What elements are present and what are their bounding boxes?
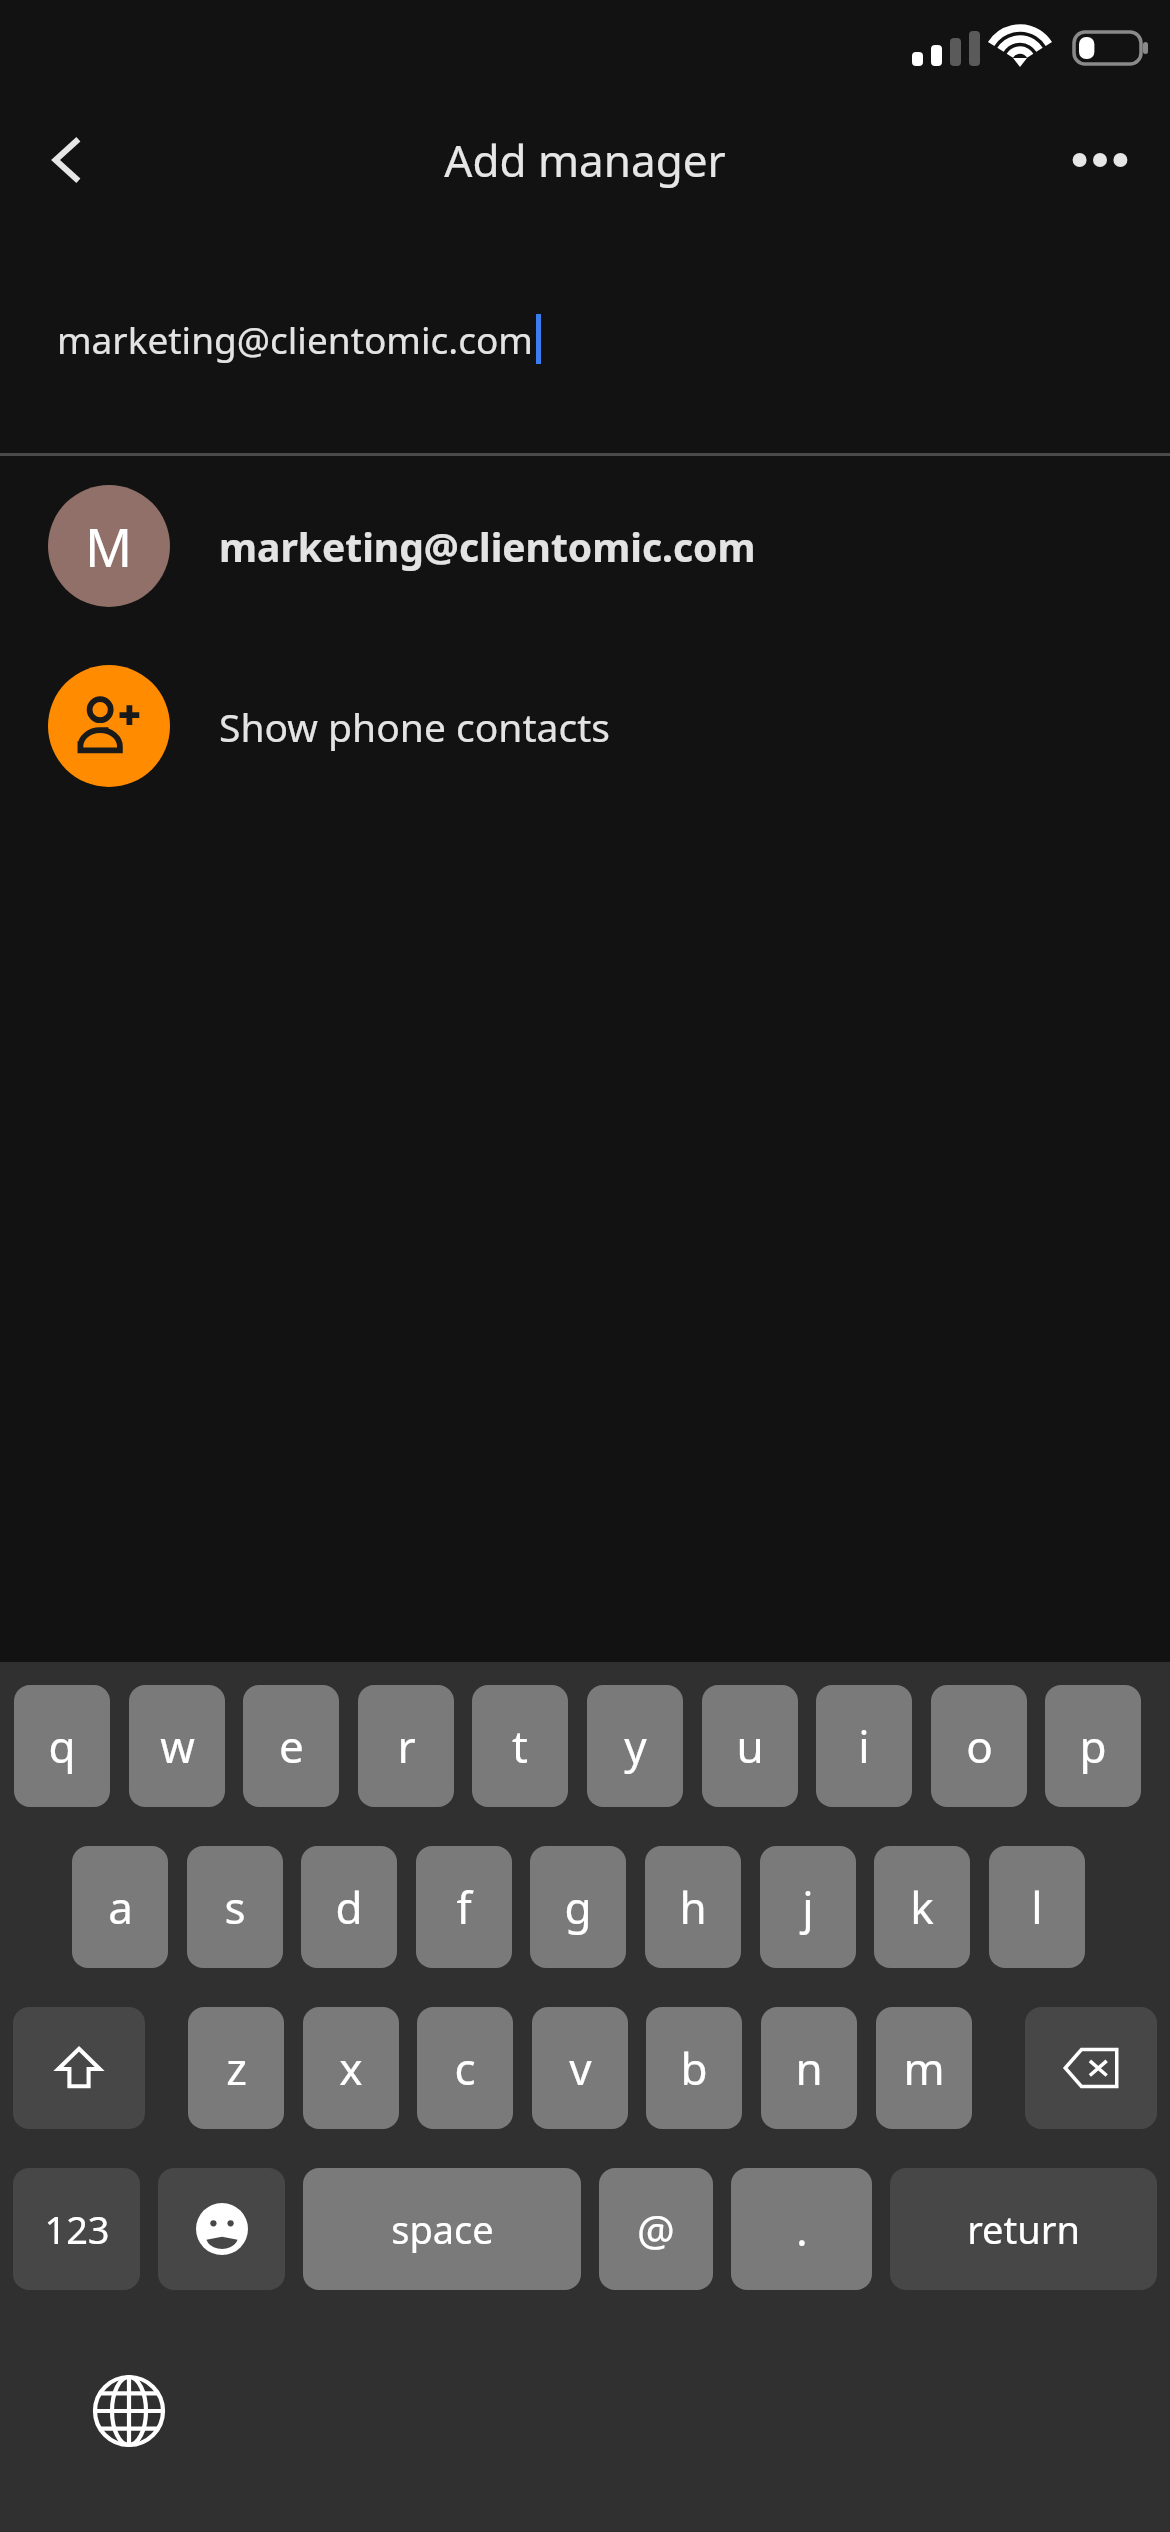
button[interactable]: e <box>243 1685 339 1807</box>
button[interactable]: i <box>816 1685 912 1807</box>
button[interactable]: y <box>587 1685 683 1807</box>
button[interactable]: r <box>358 1685 454 1807</box>
staticText: return <box>967 2203 1080 2255</box>
button[interactable]: @ <box>599 2168 713 2290</box>
staticText: r <box>397 1716 416 1776</box>
button[interactable]: j <box>760 1846 856 1968</box>
button[interactable]: Show phone contacts <box>0 636 1170 816</box>
button[interactable]: Backspace <box>1025 2007 1157 2129</box>
staticText: e <box>279 1716 304 1776</box>
button[interactable]: space <box>303 2168 581 2290</box>
staticText: n <box>795 2038 823 2098</box>
staticText: i <box>858 1716 870 1776</box>
button[interactable]: . <box>731 2168 872 2290</box>
button[interactable]: w <box>129 1685 225 1807</box>
button[interactable]: o <box>931 1685 1027 1807</box>
button[interactable]: q <box>14 1685 110 1807</box>
staticText: 123 <box>44 2203 110 2255</box>
button[interactable]: m <box>876 2007 972 2129</box>
staticText: y <box>624 1716 647 1776</box>
button[interactable]: Shift <box>13 2007 145 2129</box>
staticText: b <box>680 2038 708 2098</box>
button[interactable]: h <box>645 1846 741 1968</box>
button[interactable]: x <box>303 2007 399 2129</box>
staticText: o <box>966 1716 993 1776</box>
button[interactable]: f <box>416 1846 512 1968</box>
staticText: Add manager <box>444 130 726 190</box>
staticText: . <box>796 2201 808 2258</box>
button[interactable]: g <box>530 1846 626 1968</box>
staticText: x <box>339 2038 363 2098</box>
staticText: s <box>224 1877 246 1937</box>
staticText: c <box>454 2038 476 2098</box>
button[interactable]: Back <box>22 114 114 206</box>
staticText: marketing@clientomic.com <box>219 520 756 573</box>
staticText: @ <box>637 2201 675 2258</box>
staticText: l <box>1031 1877 1043 1937</box>
button[interactable]: c <box>417 2007 513 2129</box>
staticText: p <box>1079 1716 1107 1776</box>
button[interactable]: marketing@clientomic.com <box>0 225 1170 453</box>
staticText: z <box>226 2038 247 2098</box>
button[interactable]: b <box>646 2007 742 2129</box>
staticText: u <box>736 1716 764 1776</box>
staticText: g <box>564 1877 592 1937</box>
staticText: k <box>910 1877 934 1937</box>
button[interactable]: Change keyboard language <box>90 2372 168 2450</box>
staticText: f <box>456 1877 472 1937</box>
staticText: j <box>802 1877 814 1937</box>
button[interactable]: M <box>0 456 1170 636</box>
button[interactable]: a <box>72 1846 168 1968</box>
other: Show phone contacts <box>48 665 170 787</box>
staticText: w <box>160 1716 195 1776</box>
button[interactable]: More options <box>1054 114 1146 206</box>
button[interactable]: 123 <box>13 2168 140 2290</box>
button[interactable]: t <box>472 1685 568 1807</box>
button[interactable]: z <box>188 2007 284 2129</box>
button[interactable]: s <box>187 1846 283 1968</box>
staticText: v <box>569 2038 592 2098</box>
staticText: m <box>903 2038 945 2098</box>
button[interactable]: l <box>989 1846 1085 1968</box>
staticText: a <box>108 1877 133 1937</box>
staticText: q <box>48 1716 76 1776</box>
staticText: h <box>679 1877 707 1937</box>
staticText: Show phone contacts <box>219 700 610 753</box>
staticText: t <box>512 1716 528 1776</box>
button[interactable]: k <box>874 1846 970 1968</box>
staticText: space <box>391 2203 494 2255</box>
staticText: d <box>335 1877 363 1937</box>
button[interactable]: d <box>301 1846 397 1968</box>
staticText: M <box>85 511 133 582</box>
button[interactable]: u <box>702 1685 798 1807</box>
button[interactable]: p <box>1045 1685 1141 1807</box>
button[interactable]: n <box>761 2007 857 2129</box>
button[interactable]: return <box>890 2168 1157 2290</box>
button[interactable]: Emoji <box>158 2168 285 2290</box>
staticText: marketing@clientomic.com <box>57 314 533 364</box>
button[interactable]: v <box>532 2007 628 2129</box>
